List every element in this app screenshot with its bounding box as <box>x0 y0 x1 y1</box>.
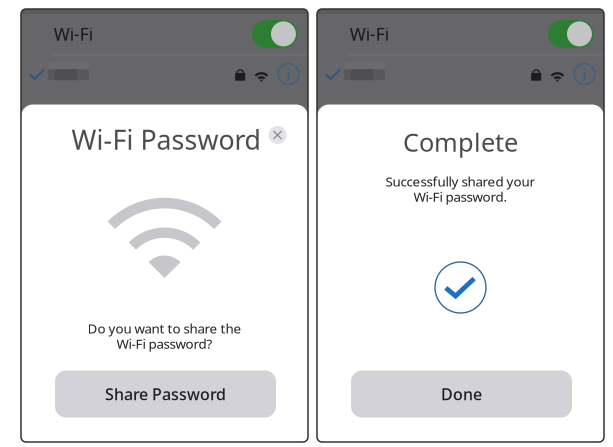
staticText: Wi-Fi <box>54 22 93 45</box>
button[interactable]: Connected network, info <box>317 60 604 96</box>
staticText: Wi-Fi password. <box>413 188 507 205</box>
button[interactable]: Wi-Fi on <box>252 20 297 48</box>
button[interactable]: Done <box>351 370 572 417</box>
staticText: Successfully shared your <box>385 172 535 190</box>
staticText: Complete <box>403 125 518 159</box>
staticText: Wi-Fi <box>350 22 389 45</box>
button[interactable]: Share Password <box>55 370 276 417</box>
button[interactable]: Wi-Fi on <box>548 20 593 48</box>
staticText: Wi-Fi password? <box>116 335 212 352</box>
button[interactable]: Connected network, info <box>21 60 308 96</box>
staticText: Wi-Fi Password <box>71 122 260 157</box>
staticText: Share Password <box>105 383 226 405</box>
staticText: Done <box>441 383 482 405</box>
button[interactable]: Close <box>262 120 292 150</box>
staticText: Do you want to share the <box>87 319 241 337</box>
